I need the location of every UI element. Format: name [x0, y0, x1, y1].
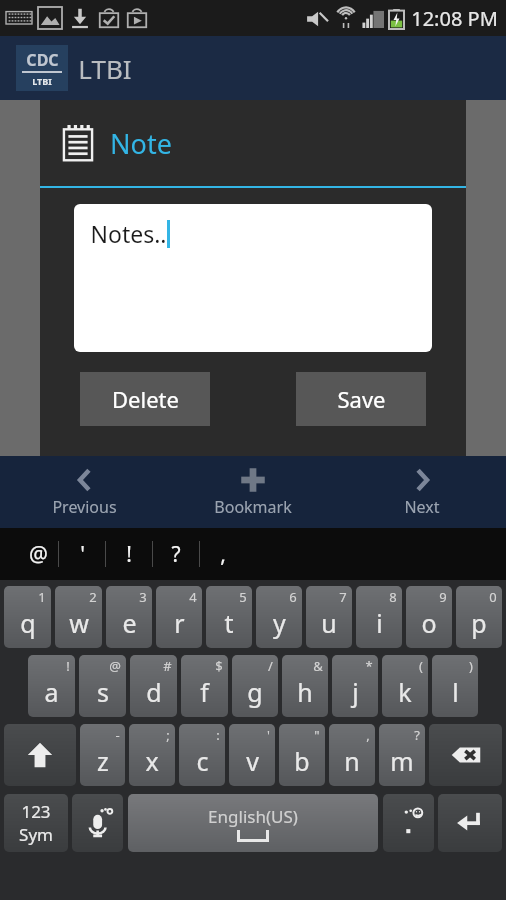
staticText: -: [115, 726, 120, 744]
button[interactable]: English(US): [128, 794, 378, 852]
button[interactable]: 6: [256, 586, 302, 648]
staticText: 2: [89, 588, 97, 606]
staticText: j: [352, 675, 359, 709]
staticText: LTBI: [32, 75, 52, 87]
button[interactable]: Backspace: [429, 724, 502, 786]
button[interactable]: &: [282, 655, 328, 717]
staticText: Previous: [52, 496, 117, 518]
button[interactable]: ): [432, 655, 478, 717]
staticText: t: [224, 606, 234, 640]
staticText: e: [122, 606, 137, 640]
staticText: k: [398, 675, 412, 709]
staticText: !: [126, 540, 132, 569]
staticText: ,: [220, 540, 226, 569]
staticText: Delete: [112, 384, 179, 414]
staticText: 6: [289, 588, 297, 606]
button[interactable]: 7: [306, 586, 352, 648]
staticText: ?: [171, 540, 181, 569]
button[interactable]: !: [106, 528, 152, 580]
staticText: d: [146, 675, 162, 709]
staticText: #: [163, 657, 172, 675]
staticText: m: [390, 744, 414, 778]
button[interactable]: ': [59, 528, 105, 580]
button[interactable]: (: [382, 655, 428, 717]
button[interactable]: Emoji and period: [383, 794, 434, 852]
button[interactable]: ?: [153, 528, 199, 580]
staticText: h: [297, 675, 313, 709]
button[interactable]: @: [18, 528, 58, 580]
button[interactable]: #: [130, 655, 177, 717]
button[interactable]: ': [229, 724, 275, 786]
button[interactable]: 5: [206, 586, 252, 648]
staticText: *: [365, 657, 373, 675]
staticText: Note: [110, 125, 172, 162]
staticText: Notes..: [90, 218, 167, 249]
staticText: 8: [389, 588, 397, 606]
staticText: /: [268, 657, 273, 675]
button[interactable]: 0: [456, 586, 502, 648]
button[interactable]: 123: [4, 794, 68, 852]
staticText: ": [314, 726, 320, 744]
button[interactable]: @: [79, 655, 126, 717]
staticText: 9: [439, 588, 447, 606]
staticText: s: [97, 675, 109, 709]
button[interactable]: 1: [4, 586, 51, 648]
staticText: b: [294, 744, 310, 778]
button[interactable]: Bookmark: [168, 456, 337, 528]
staticText: English(US): [208, 805, 298, 828]
staticText: z: [97, 744, 109, 778]
button[interactable]: 3: [106, 586, 152, 648]
button[interactable]: Enter: [438, 794, 502, 852]
staticText: v: [246, 744, 259, 778]
button[interactable]: ?: [379, 724, 425, 786]
button[interactable]: -: [80, 724, 125, 786]
staticText: Sym: [19, 823, 53, 846]
staticText: Next: [404, 496, 440, 518]
button[interactable]: ": [279, 724, 325, 786]
button[interactable]: 9: [406, 586, 452, 648]
staticText: Save: [337, 384, 386, 414]
staticText: 1: [38, 588, 46, 606]
staticText: (: [419, 657, 423, 675]
staticText: 4: [189, 588, 197, 606]
staticText: ): [469, 657, 473, 675]
button[interactable]: 4: [156, 586, 202, 648]
staticText: ': [80, 540, 85, 569]
staticText: CDC: [26, 49, 59, 71]
button[interactable]: 8: [356, 586, 402, 648]
button[interactable]: ;: [129, 724, 175, 786]
staticText: u: [321, 606, 337, 640]
staticText: q: [20, 606, 36, 640]
button[interactable]: Next: [337, 456, 506, 528]
staticText: n: [344, 744, 360, 778]
staticText: 12:08 PM: [411, 5, 498, 32]
staticText: 0: [489, 588, 497, 606]
button[interactable]: Notes..: [74, 204, 432, 352]
button[interactable]: 2: [55, 586, 102, 648]
staticText: :: [216, 726, 220, 744]
button[interactable]: :: [179, 724, 225, 786]
button[interactable]: *: [332, 655, 378, 717]
staticText: &: [313, 657, 323, 675]
button[interactable]: Shift: [4, 724, 76, 786]
staticText: p: [471, 606, 487, 640]
staticText: y: [273, 606, 286, 640]
button[interactable]: Delete: [80, 372, 210, 426]
staticText: ,: [366, 726, 370, 744]
button[interactable]: Save: [296, 372, 426, 426]
staticText: o: [421, 606, 437, 640]
button[interactable]: /: [232, 655, 278, 717]
button[interactable]: $: [181, 655, 228, 717]
staticText: r: [174, 606, 185, 640]
button[interactable]: Voice input: [72, 794, 123, 852]
staticText: !: [66, 657, 70, 675]
staticText: w: [69, 606, 89, 640]
button[interactable]: ,: [329, 724, 375, 786]
staticText: x: [145, 744, 159, 778]
button[interactable]: Previous: [0, 456, 168, 528]
button[interactable]: !: [28, 655, 75, 717]
staticText: LTBI: [78, 51, 132, 86]
button[interactable]: ,: [200, 528, 246, 580]
staticText: g: [247, 675, 263, 709]
staticText: c: [196, 744, 209, 778]
